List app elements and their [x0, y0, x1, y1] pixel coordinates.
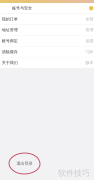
button[interactable]: 清除缓存	[0, 47, 94, 57]
button[interactable]: 账号与安全	[0, 3, 94, 13]
staticText: 关于我们	[2, 60, 18, 65]
staticText: 软件技巧	[58, 168, 90, 178]
button[interactable]: 退出登录	[9, 153, 40, 174]
staticText: 我的订单	[2, 17, 18, 21]
button[interactable]: 关于我们	[0, 57, 94, 68]
staticText: 版本	[85, 60, 93, 65]
staticText: 清除缓存	[2, 49, 18, 54]
staticText: 退出登录	[16, 161, 32, 166]
button[interactable]: 账号绑定	[0, 36, 94, 46]
button[interactable]: 我的订单	[0, 14, 94, 24]
button[interactable]: 地址管理	[0, 25, 94, 35]
staticText: 账号与安全	[12, 6, 32, 11]
staticText: 账号绑定	[2, 38, 18, 43]
staticText: 地址管理	[2, 27, 18, 32]
staticText: 12M	[85, 49, 93, 54]
staticText: 全部	[85, 17, 93, 21]
staticText: 管理	[85, 27, 93, 32]
staticText: 设置	[85, 38, 93, 43]
